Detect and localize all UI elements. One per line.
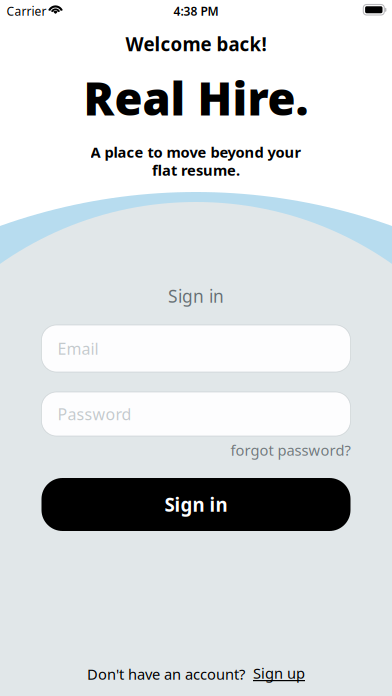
staticText: Welcome back! [125,32,266,56]
staticText: Sign up [253,663,305,683]
staticText: Real Hire. [83,68,308,128]
staticText: flat resume. [152,160,240,180]
button[interactable]: Email [41,325,350,372]
staticText: Carrier [6,3,46,19]
button[interactable]: Password [41,392,350,436]
staticText: Sign in [164,492,227,517]
button[interactable]: Sign up [253,665,305,683]
staticText: Don't have an account? [87,664,245,684]
staticText: Email [57,338,98,359]
staticText: 4:38 PM [173,3,218,19]
staticText: Password [57,403,131,425]
button[interactable]: forgot password? [41,441,350,459]
button[interactable]: Sign in [41,478,350,531]
staticText: A place to move beyond your [90,142,301,162]
staticText: forgot password? [230,440,350,460]
staticText: Sign in [168,284,224,307]
